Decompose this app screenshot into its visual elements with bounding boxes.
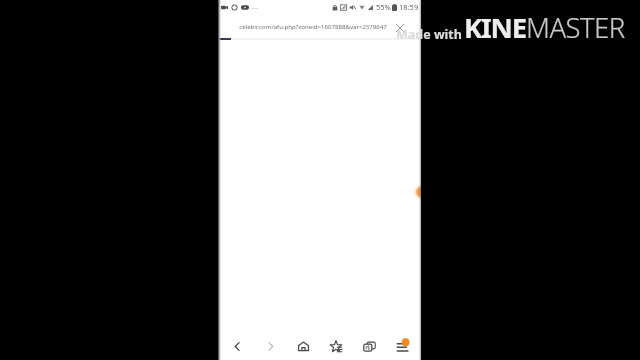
button[interactable]: Tabs	[355, 332, 383, 360]
button[interactable]: Close	[394, 22, 406, 34]
button[interactable]: Forward	[256, 332, 284, 360]
button[interactable]: celebir.com/afu.php?zoneid=1607888&var=2…	[230, 17, 400, 35]
staticText: Made with	[396, 26, 462, 43]
staticText: celebir.com/afu.php?zoneid=1607888&var=2…	[239, 22, 387, 30]
staticText: MASTER	[526, 9, 625, 46]
button[interactable]: Menu	[388, 332, 416, 360]
staticText: 55%	[376, 2, 391, 12]
button[interactable]: Home	[289, 332, 317, 360]
button[interactable]: Bookmarks	[322, 332, 350, 360]
staticText: KINE	[464, 9, 526, 46]
button[interactable]: Back	[223, 332, 251, 360]
staticText: 18:59	[399, 2, 419, 12]
